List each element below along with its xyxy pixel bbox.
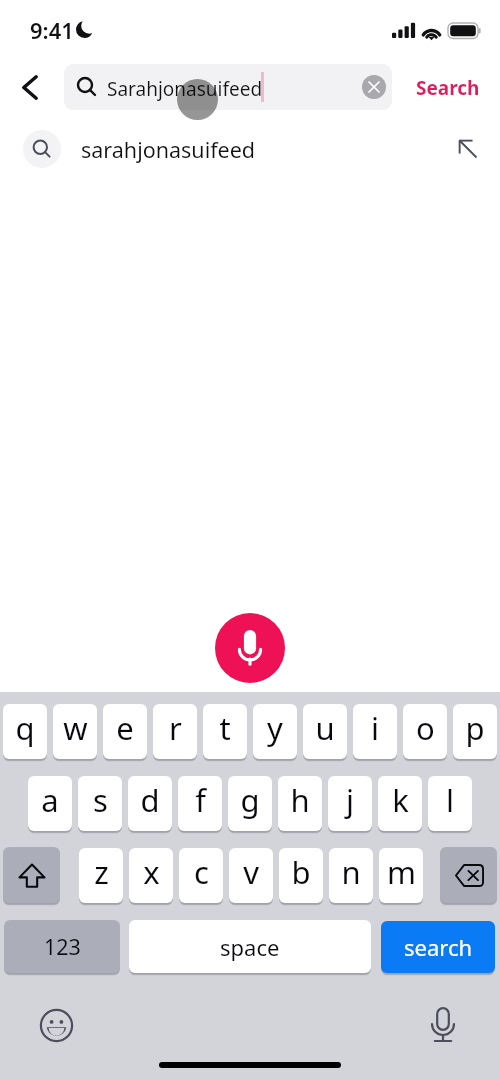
staticText: x xyxy=(143,851,160,893)
staticText: o xyxy=(416,707,435,749)
button[interactable]: h xyxy=(278,776,322,831)
button[interactable]: w xyxy=(53,704,97,759)
button[interactable]: n xyxy=(329,848,373,903)
staticText: a xyxy=(41,779,59,821)
staticText: h xyxy=(290,779,310,821)
button[interactable]: Shift xyxy=(3,847,60,903)
staticText: l xyxy=(446,779,454,821)
button[interactable]: t xyxy=(203,704,247,759)
staticText: r xyxy=(169,707,182,749)
staticText: f xyxy=(195,779,206,821)
button[interactable]: Use this suggestion xyxy=(444,125,492,173)
button[interactable]: m xyxy=(379,848,423,903)
staticText: e xyxy=(116,707,134,749)
button[interactable]: Sarahjonasuifeed xyxy=(64,64,392,110)
staticText: search xyxy=(404,932,473,962)
button[interactable]: q xyxy=(3,704,47,759)
staticText: Sarahjonasuifeed xyxy=(107,76,263,102)
staticText: n xyxy=(341,851,361,893)
button[interactable]: search xyxy=(381,921,495,973)
staticText: c xyxy=(194,851,209,893)
button[interactable]: Clear text xyxy=(362,75,386,99)
button[interactable]: b xyxy=(279,848,323,903)
staticText: m xyxy=(387,851,416,893)
button[interactable]: e xyxy=(103,704,147,759)
button[interactable]: space xyxy=(129,920,371,973)
button[interactable]: Voice search xyxy=(215,613,285,683)
staticText: q xyxy=(15,707,35,749)
button[interactable]: i xyxy=(353,704,397,759)
staticText: d xyxy=(140,779,160,821)
button[interactable]: o xyxy=(403,704,447,759)
staticText: y xyxy=(267,707,283,749)
button[interactable]: j xyxy=(328,776,372,831)
button[interactable]: a xyxy=(28,776,72,831)
staticText: v xyxy=(243,851,259,893)
button[interactable]: z xyxy=(79,848,123,903)
staticText: Search xyxy=(416,75,480,101)
button[interactable]: y xyxy=(253,704,297,759)
button[interactable]: v xyxy=(229,848,273,903)
button[interactable]: x xyxy=(129,848,173,903)
button[interactable]: r xyxy=(153,704,197,759)
staticText: w xyxy=(63,707,88,749)
staticText: i xyxy=(371,707,379,749)
staticText: u xyxy=(315,707,335,749)
staticText: t xyxy=(219,707,231,749)
staticText: space xyxy=(220,932,280,962)
button[interactable]: g xyxy=(228,776,272,831)
button[interactable]: c xyxy=(179,848,223,903)
staticText: b xyxy=(291,851,311,893)
button[interactable]: sarahjonasuifeed xyxy=(0,120,500,178)
staticText: g xyxy=(240,779,260,821)
button[interactable]: Dictate xyxy=(421,1003,465,1047)
staticText: k xyxy=(392,779,409,821)
button[interactable]: l xyxy=(428,776,472,831)
button[interactable]: k xyxy=(378,776,422,831)
button[interactable]: Emoji xyxy=(34,1003,78,1047)
staticText: s xyxy=(93,779,108,821)
button[interactable]: Back xyxy=(8,65,52,109)
button[interactable]: s xyxy=(78,776,122,831)
button[interactable]: 123 xyxy=(4,920,120,973)
staticText: p xyxy=(465,707,485,749)
staticText: 9:41 xyxy=(30,15,74,45)
button[interactable]: Backspace xyxy=(440,847,497,903)
staticText: j xyxy=(346,779,354,821)
staticText: 123 xyxy=(44,932,81,961)
button[interactable]: p xyxy=(453,704,497,759)
button[interactable]: Search xyxy=(416,67,480,109)
button[interactable]: u xyxy=(303,704,347,759)
button[interactable]: f xyxy=(178,776,222,831)
staticText: sarahjonasuifeed xyxy=(81,135,256,164)
staticText: z xyxy=(94,851,109,893)
button[interactable]: d xyxy=(128,776,172,831)
